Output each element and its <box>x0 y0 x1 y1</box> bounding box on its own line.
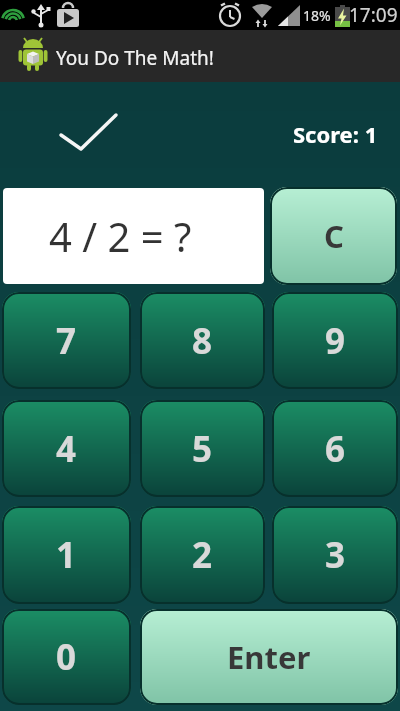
staticText: 6 <box>325 425 346 473</box>
button[interactable]: 8 <box>140 292 265 389</box>
button[interactable]: 1 <box>2 506 131 604</box>
staticText: 8 <box>192 317 213 365</box>
button[interactable]: 4 <box>2 400 131 497</box>
button[interactable]: 0 <box>2 609 131 705</box>
staticText: 5 <box>192 425 213 473</box>
button[interactable]: C <box>270 187 397 285</box>
staticText: 9 <box>325 317 346 365</box>
button[interactable]: 2 <box>140 506 265 604</box>
staticText: Enter <box>227 636 311 678</box>
staticText: 4 / 2 = ? <box>49 209 192 263</box>
staticText: 18% <box>303 6 331 25</box>
staticText: 2 <box>192 531 213 579</box>
staticText: 17:09 <box>349 2 398 28</box>
button[interactable]: 5 <box>140 400 265 497</box>
button[interactable]: 6 <box>272 400 398 497</box>
staticText: 4 <box>56 425 77 473</box>
staticText: 3 <box>325 531 346 579</box>
staticText: C <box>324 215 344 257</box>
button[interactable]: 3 <box>272 506 398 604</box>
staticText: 0 <box>56 633 77 681</box>
staticText: Score: 1 <box>293 119 378 149</box>
button[interactable]: 9 <box>272 292 398 389</box>
button[interactable]: 7 <box>2 292 131 389</box>
staticText: 1 <box>56 531 77 579</box>
staticText: 7 <box>56 317 77 365</box>
button[interactable]: Enter <box>140 609 398 705</box>
staticText: You Do The Math! <box>56 45 214 71</box>
